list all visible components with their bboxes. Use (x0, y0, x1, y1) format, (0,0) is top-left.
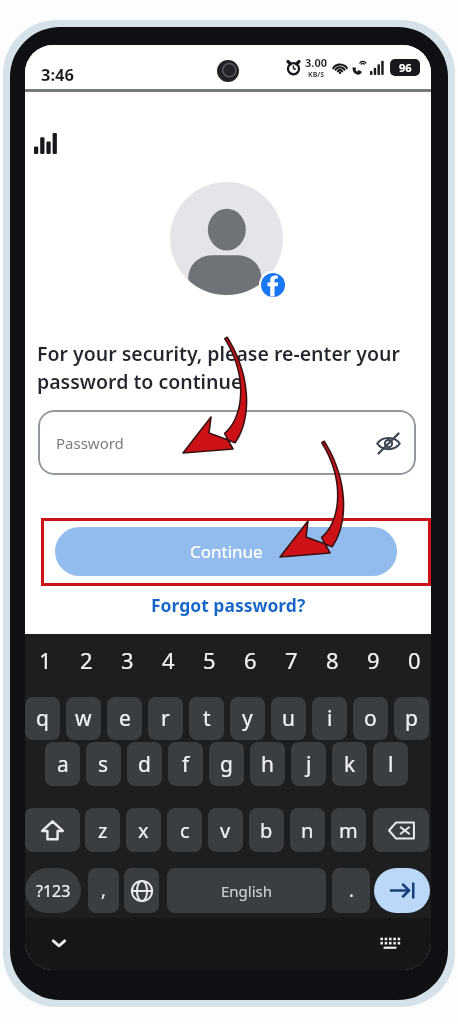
button[interactable]: . (332, 868, 370, 913)
staticText: v (220, 817, 231, 844)
staticText: o (364, 704, 377, 733)
button[interactable]: Password (38, 410, 416, 475)
staticText: English (221, 881, 273, 901)
button[interactable]: a (45, 742, 80, 786)
button[interactable]: q (25, 697, 60, 740)
staticText: g (220, 750, 233, 779)
button[interactable]: z (85, 808, 120, 852)
button[interactable]: 8 (315, 638, 350, 682)
staticText: . (349, 878, 354, 903)
button[interactable]: 4 (151, 638, 186, 682)
button[interactable]: Stats (25, 122, 66, 164)
staticText: b (260, 817, 273, 844)
staticText: h (261, 750, 274, 779)
button[interactable]: m (331, 808, 366, 852)
button[interactable]: o (353, 697, 388, 740)
button[interactable]: f (168, 742, 203, 786)
staticText: 8 (326, 645, 339, 675)
staticText: 9 (367, 645, 380, 675)
staticText: w (75, 704, 92, 733)
staticText: For your security, please re-enter your … (37, 340, 420, 395)
staticText: i (327, 704, 333, 733)
button[interactable]: 6 (233, 638, 268, 682)
button[interactable]: 3 (110, 638, 145, 682)
staticText: , (101, 878, 106, 903)
button[interactable]: 2 (69, 638, 104, 682)
staticText: e (119, 704, 131, 733)
button[interactable]: n (290, 808, 325, 852)
button[interactable]: v (208, 808, 243, 852)
button[interactable]: 1 (28, 638, 63, 682)
staticText: 0 (408, 645, 421, 675)
button[interactable]: , (88, 868, 119, 913)
button[interactable]: d (127, 742, 162, 786)
staticText: j (306, 750, 312, 779)
staticText: 3 (121, 645, 134, 675)
staticText: d (138, 750, 151, 779)
staticText: 3:46 (41, 63, 74, 85)
staticText: Forgot password? (151, 593, 306, 617)
staticText: m (339, 817, 358, 844)
staticText: y (242, 704, 253, 733)
button[interactable]: Forgot password? (145, 591, 312, 619)
button[interactable]: Enter (374, 868, 430, 913)
button[interactable]: 0 (397, 638, 431, 682)
button[interactable]: b (249, 808, 284, 852)
staticText: ?123 (36, 880, 71, 902)
staticText: l (388, 750, 394, 779)
button[interactable]: Backspace (373, 808, 429, 852)
button[interactable]: y (230, 697, 265, 740)
staticText: Continue (190, 540, 263, 563)
button[interactable]: k (332, 742, 367, 786)
button[interactable]: English (167, 868, 326, 913)
button[interactable]: 9 (356, 638, 391, 682)
button[interactable]: t (189, 697, 224, 740)
button[interactable]: j (291, 742, 326, 786)
button[interactable]: s (86, 742, 121, 786)
staticText: 96 (399, 60, 412, 75)
staticText: a (57, 750, 69, 779)
button[interactable]: i (312, 697, 347, 740)
staticText: p (405, 704, 418, 733)
staticText: 5 (203, 645, 216, 675)
staticText: k (344, 750, 356, 779)
staticText: t (203, 704, 211, 733)
staticText: 6 (244, 645, 257, 675)
staticText: Password (56, 433, 124, 453)
button[interactable]: g (209, 742, 244, 786)
button[interactable]: p (394, 697, 429, 740)
staticText: z (98, 817, 108, 844)
button[interactable]: Hide keyboard (42, 926, 76, 960)
button[interactable]: ?123 (25, 868, 81, 913)
button[interactable]: 5 (192, 638, 227, 682)
button[interactable]: Keyboard switcher (373, 926, 407, 960)
button[interactable]: h (250, 742, 285, 786)
staticText: 4 (162, 645, 175, 675)
button[interactable]: r (148, 697, 183, 740)
staticText: x (138, 817, 149, 844)
button[interactable]: e (107, 697, 142, 740)
staticText: r (161, 704, 170, 733)
button[interactable]: Change language (124, 868, 159, 913)
staticText: u (282, 704, 295, 733)
staticText: KB/S (308, 70, 325, 80)
button[interactable]: Shift (25, 808, 80, 852)
staticText: 2 (80, 645, 93, 675)
staticText: s (98, 750, 109, 779)
staticText: c (180, 817, 190, 844)
button[interactable]: w (66, 697, 101, 740)
button[interactable]: x (126, 808, 161, 852)
staticText: 1 (39, 645, 52, 675)
staticText: n (301, 817, 314, 844)
button[interactable]: Show password (373, 428, 403, 458)
staticText: f (182, 750, 190, 779)
staticText: 7 (285, 645, 298, 675)
button[interactable]: u (271, 697, 306, 740)
button[interactable]: 7 (274, 638, 309, 682)
button[interactable]: Continue (55, 527, 397, 576)
staticText: 3.00 (305, 55, 327, 70)
button[interactable]: l (373, 742, 408, 786)
staticText: q (36, 704, 49, 733)
button[interactable]: c (167, 808, 202, 852)
